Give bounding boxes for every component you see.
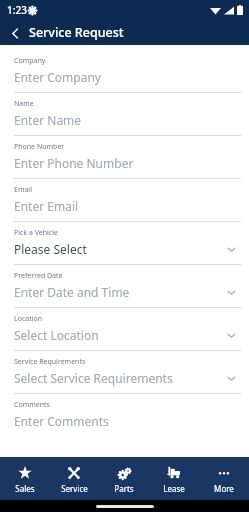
- staticText: Lease: [163, 483, 185, 494]
- button[interactable]: Service: [49, 460, 99, 498]
- button[interactable]: Lease: [149, 460, 199, 498]
- staticText: Enter Date and Time: [14, 284, 225, 300]
- button[interactable]: Pick a Vehicle: [0, 222, 249, 265]
- button[interactable]: More: [199, 460, 249, 498]
- staticText: Sales: [15, 483, 35, 494]
- staticText: Service: [61, 483, 88, 494]
- staticText: Select Location: [14, 327, 225, 343]
- button[interactable]: Preferred Date: [0, 265, 249, 308]
- staticText: Service Request: [29, 24, 124, 41]
- staticText: Name: [14, 99, 34, 109]
- button[interactable]: Company: [0, 50, 249, 93]
- staticText: Enter Name: [14, 112, 249, 128]
- staticText: Service Requirements: [14, 357, 86, 367]
- button[interactable]: Comments: [0, 394, 249, 436]
- staticText: Please Select: [14, 241, 225, 257]
- staticText: Enter Comments: [14, 413, 249, 429]
- staticText: Enter Email: [14, 198, 249, 214]
- staticText: Comments: [14, 400, 50, 410]
- staticText: Select Service Requirements: [14, 370, 225, 386]
- staticText: Enter Company: [14, 69, 249, 85]
- button[interactable]: Email: [0, 179, 249, 222]
- staticText: Enter Phone Number: [14, 155, 249, 171]
- staticText: Parts: [114, 483, 134, 494]
- staticText: Pick a Vehicle: [14, 228, 58, 238]
- button[interactable]: Sales: [0, 460, 49, 498]
- button[interactable]: Location: [0, 308, 249, 351]
- button[interactable]: Name: [0, 93, 249, 136]
- staticText: More: [214, 483, 234, 494]
- staticText: Email: [14, 185, 32, 195]
- button[interactable]: Service Requirements: [0, 351, 249, 394]
- staticText: Preferred Date: [14, 271, 63, 281]
- staticText: 1:23: [7, 3, 27, 17]
- staticText: Location: [14, 314, 43, 324]
- button[interactable]: Back: [4, 22, 26, 44]
- button[interactable]: Parts: [99, 460, 149, 498]
- button[interactable]: Phone Number: [0, 136, 249, 179]
- staticText: Phone Number: [14, 142, 65, 152]
- staticText: Company: [14, 56, 46, 66]
